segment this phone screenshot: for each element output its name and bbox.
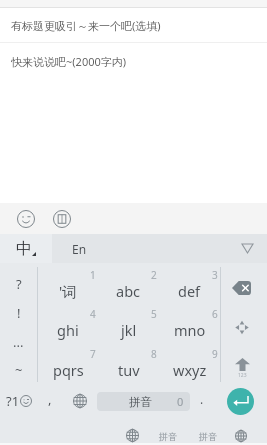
button[interactable]: Stickers — [47, 204, 77, 234]
button[interactable]: abc — [98, 263, 159, 302]
button[interactable]: Hide keyboard — [227, 234, 267, 263]
button[interactable]: ?1 — [0, 382, 38, 420]
staticText: 有标题更吸引～来一个吧(选填) — [11, 18, 161, 33]
staticText: ··· — [13, 337, 24, 355]
button[interactable]: , — [38, 382, 62, 420]
staticText: 1 — [90, 268, 96, 282]
button[interactable]: Enter — [214, 382, 267, 420]
staticText: mno — [174, 320, 206, 340]
staticText: 中 — [16, 239, 32, 259]
staticText: 拼音 — [129, 395, 152, 409]
button[interactable]: '词 — [38, 263, 98, 302]
staticText: ~ — [15, 361, 23, 379]
button[interactable]: def — [159, 263, 220, 302]
staticText: abc — [116, 281, 141, 301]
button[interactable]: ? — [0, 263, 37, 292]
staticText: En — [72, 241, 87, 257]
staticText: 拼音 — [199, 431, 217, 442]
staticText: tuv — [118, 360, 140, 380]
staticText: 5 — [151, 307, 157, 321]
staticText: 8 — [151, 347, 157, 361]
staticText: ! — [17, 304, 21, 322]
staticText: jkl — [121, 320, 137, 340]
staticText: 9 — [212, 347, 218, 361]
staticText: ghi — [57, 320, 79, 340]
staticText: def — [178, 281, 201, 301]
button[interactable]: ! — [0, 292, 37, 322]
button[interactable]: tuv — [98, 342, 159, 382]
staticText: . — [200, 391, 204, 407]
staticText: 123 — [238, 372, 247, 379]
button[interactable]: En — [52, 234, 227, 263]
button[interactable]: 中 — [0, 234, 52, 263]
button[interactable]: Emoji — [11, 204, 41, 234]
staticText: '词 — [59, 281, 77, 301]
staticText: 4 — [90, 307, 96, 321]
button[interactable]: 有标题更吸引～来一个吧(选填) — [0, 8, 267, 42]
button[interactable]: Move cursor — [221, 302, 267, 342]
button[interactable]: 快来说说吧~(2000字内) — [0, 43, 267, 203]
button[interactable]: wxyz — [159, 342, 220, 382]
button[interactable]: . — [190, 382, 214, 420]
button[interactable]: ghi — [38, 302, 98, 342]
staticText: pqrs — [53, 360, 84, 380]
staticText: 拼音 — [159, 431, 177, 442]
staticText: 2 — [151, 268, 157, 282]
staticText: 6 — [212, 307, 218, 321]
button[interactable]: 拼音 — [97, 392, 190, 411]
staticText: 7 — [90, 347, 96, 361]
staticText: , — [48, 390, 52, 408]
staticText: 0 — [177, 394, 184, 409]
button[interactable]: ··· — [0, 322, 37, 352]
staticText: wxyz — [173, 360, 207, 380]
button[interactable]: mno — [159, 302, 220, 342]
staticText: ? — [16, 275, 22, 293]
button[interactable]: Switch input method — [62, 382, 97, 420]
staticText: 快来说说吧~(2000字内) — [11, 54, 127, 69]
staticText: ?1 — [6, 392, 20, 410]
button[interactable]: jkl — [98, 302, 159, 342]
button[interactable]: pqrs — [38, 342, 98, 382]
staticText: 3 — [212, 268, 218, 282]
button[interactable]: Delete — [221, 263, 267, 302]
button[interactable]: ~ — [0, 352, 37, 382]
button[interactable]: Shift, numbers — [221, 342, 267, 382]
